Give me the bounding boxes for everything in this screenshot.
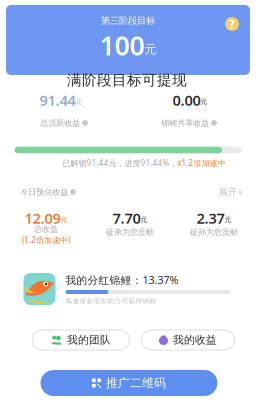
staticText: 我的收益	[173, 333, 217, 346]
staticText: 元	[60, 216, 67, 224]
staticText: (1.2倍加速中)	[22, 235, 70, 245]
staticText: 7.70	[112, 208, 140, 228]
button[interactable]: 我的分红锦鲤：13.37%	[23, 272, 230, 306]
staticText: 推广二维码	[106, 376, 166, 390]
staticText: i	[84, 119, 85, 127]
staticText: ?	[229, 16, 235, 32]
staticText: 元	[140, 216, 147, 224]
button[interactable]: 帮助	[225, 16, 239, 32]
staticText: 第三阶段目标	[101, 15, 155, 26]
staticText: 100	[99, 27, 144, 63]
button[interactable]: 推广二维码	[40, 370, 217, 396]
staticText: 锦鲤共享收益	[161, 118, 209, 128]
staticText: 91.44	[39, 90, 75, 110]
staticText: 满阶段目标可提现	[67, 71, 187, 89]
staticText: 元	[144, 42, 156, 56]
staticText: 12.09	[24, 208, 60, 228]
staticText: ∨	[237, 187, 243, 197]
staticText: 徒孙为您贡献	[190, 227, 238, 237]
staticText: 元	[200, 98, 207, 106]
staticText: 我的团队	[67, 333, 111, 346]
staticText: i	[72, 188, 73, 196]
staticText: 总活跃收益	[40, 118, 80, 128]
staticText: 每邀请新朋友助力可获得锦鲤	[65, 297, 156, 305]
button[interactable]: 展开	[218, 186, 243, 198]
staticText: 我的分红锦鲤：13.37%	[65, 273, 178, 287]
staticText: 已解锁91.44元，进度91.44%，	[62, 158, 177, 168]
staticText: 元	[224, 216, 231, 224]
staticText: 总收益	[34, 224, 58, 234]
staticText: 今日预估收益	[20, 187, 68, 197]
staticText: x1.2倍加速中	[177, 158, 225, 168]
button[interactable]: 我的收益	[141, 330, 234, 350]
staticText: 展开	[218, 186, 236, 198]
staticText: 元	[75, 98, 82, 106]
staticText: 0.00	[172, 90, 200, 110]
staticText: 2.37	[196, 208, 224, 228]
staticText: 徒弟为您贡献	[106, 227, 154, 237]
button[interactable]: 我的团队	[32, 330, 129, 350]
